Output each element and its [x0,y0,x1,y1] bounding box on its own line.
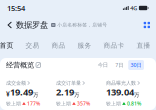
staticText: 139.04 [106,86,134,98]
staticText: 首页 [0,41,13,50]
staticText: 万 [74,92,79,98]
staticText: 4G [130,4,137,12]
staticText: 较上期 [6,100,21,106]
button[interactable]: 7日 [113,60,126,70]
button[interactable]: 成交金额 [6,80,56,107]
button[interactable]: 商品卡 [103,37,136,54]
staticText: ¥ [6,89,10,98]
staticText: 2.19 [56,86,74,98]
staticText: 商品曝光人数 [106,80,136,86]
button[interactable]: 交易 [25,37,51,54]
button[interactable]: 商品曝光人数 [106,80,156,107]
staticText: 服务 [77,41,91,50]
button[interactable]: 更多 [142,16,152,34]
button[interactable]: 商品 [51,37,77,54]
staticText: 数据罗盘 [16,20,48,30]
staticText: 万 [33,92,38,98]
button[interactable]: 返回 [4,16,16,34]
button[interactable]: 30日 [128,60,144,70]
staticText: 小店名称标签，店铺号 [57,22,107,28]
button[interactable]: 首页 [0,37,25,54]
staticText: 7日 [115,61,123,69]
staticText: 0.81% [127,100,141,107]
staticText: 成交金额 [6,80,26,86]
staticText: 30日 [131,61,142,69]
staticText: 19.49 [10,86,33,98]
button[interactable]: 服务 [77,37,103,54]
staticText: 较上期 [56,100,71,106]
staticText: 成交订单量 [56,80,81,86]
staticText: 直播 [136,41,150,50]
button[interactable]: 成交订单量 [56,80,106,107]
staticText: 商品卡 [103,41,124,50]
button[interactable]: 经营概览 [0,58,41,72]
staticText: 万 [134,92,139,98]
staticText: 177% [27,100,40,107]
button[interactable]: 直播 [136,37,156,54]
staticText: 15:54 [7,3,25,13]
staticText: 今日 [98,62,108,68]
staticText: 357% [77,100,90,107]
staticText: 商品 [51,41,65,50]
staticText: 交易 [25,41,39,50]
staticText: 经营概览 [6,60,34,70]
staticText: 较上期 [106,100,121,106]
button[interactable]: 今日 [95,60,110,70]
button[interactable]: 小店名称标签，店铺号 [48,16,107,34]
